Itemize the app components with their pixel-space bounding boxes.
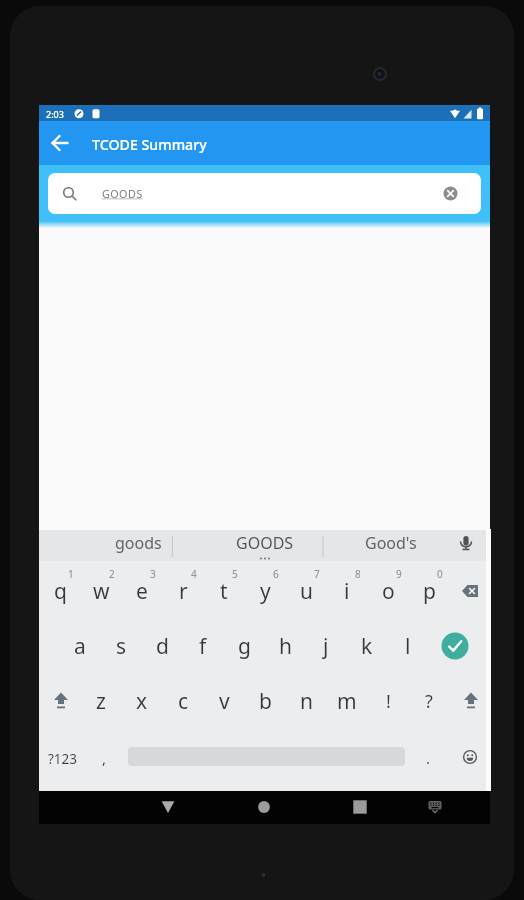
- staticText: f: [199, 632, 207, 661]
- button[interactable]: o: [370, 571, 406, 611]
- staticText: c: [178, 687, 189, 716]
- button[interactable]: p: [411, 571, 447, 611]
- staticText: a: [74, 632, 86, 661]
- staticText: z: [96, 687, 106, 716]
- staticText: 5: [232, 567, 238, 581]
- staticText: w: [93, 577, 110, 606]
- button[interactable]: l: [390, 626, 426, 666]
- button[interactable]: e: [124, 571, 160, 611]
- button[interactable]: h: [267, 626, 303, 666]
- staticText: 7: [314, 567, 320, 581]
- staticText: goods: [115, 532, 162, 554]
- button[interactable]: u: [288, 571, 324, 611]
- button[interactable]: !: [370, 681, 406, 721]
- staticText: .: [426, 748, 431, 768]
- button[interactable]: a: [62, 626, 98, 666]
- button[interactable]: c: [165, 681, 201, 721]
- button[interactable]: y: [247, 571, 283, 611]
- button[interactable]: [452, 571, 489, 611]
- button[interactable]: [344, 791, 376, 823]
- staticText: g: [238, 632, 251, 661]
- staticText: d: [156, 632, 169, 661]
- staticText: ?: [425, 689, 433, 714]
- staticText: n: [300, 687, 313, 716]
- button[interactable]: w: [83, 571, 119, 611]
- staticText: k: [361, 632, 373, 661]
- staticText: GOODS: [102, 186, 143, 201]
- button[interactable]: ?123: [43, 739, 83, 779]
- staticText: 0: [437, 567, 443, 581]
- button[interactable]: [419, 791, 451, 823]
- button[interactable]: GOODS: [48, 173, 481, 214]
- staticText: 4: [191, 567, 197, 581]
- staticText: i: [344, 577, 350, 606]
- staticText: l: [405, 632, 411, 661]
- staticText: e: [136, 577, 148, 606]
- staticText: h: [279, 632, 292, 661]
- button[interactable]: [451, 530, 484, 561]
- staticText: 2:03: [46, 108, 64, 120]
- button[interactable]: Good's: [331, 527, 451, 558]
- button[interactable]: q: [42, 571, 78, 611]
- staticText: GOODS: [236, 532, 294, 554]
- button[interactable]: m: [329, 681, 365, 721]
- button[interactable]: t: [206, 571, 242, 611]
- staticText: m: [337, 687, 357, 716]
- button[interactable]: .: [410, 738, 446, 778]
- staticText: 1: [68, 567, 74, 581]
- staticText: x: [136, 687, 148, 716]
- button[interactable]: i: [329, 571, 365, 611]
- staticText: TCODE Summary: [92, 135, 207, 154]
- staticText: y: [260, 577, 271, 606]
- button[interactable]: goods: [78, 527, 198, 558]
- staticText: j: [323, 632, 329, 661]
- staticText: t: [220, 577, 228, 606]
- staticText: u: [300, 577, 313, 606]
- button[interactable]: z: [83, 681, 119, 721]
- button[interactable]: [42, 681, 79, 721]
- button[interactable]: s: [103, 626, 139, 666]
- button[interactable]: d: [144, 626, 180, 666]
- button[interactable]: [425, 624, 485, 668]
- staticText: 8: [355, 567, 361, 581]
- staticText: b: [259, 687, 272, 716]
- staticText: p: [423, 577, 436, 606]
- button[interactable]: f: [185, 626, 221, 666]
- staticText: 9: [396, 567, 402, 581]
- staticText: o: [382, 577, 395, 606]
- button[interactable]: [452, 737, 488, 777]
- staticText: 3: [150, 567, 156, 581]
- staticText: q: [54, 577, 67, 606]
- button[interactable]: b: [247, 681, 283, 721]
- staticText: s: [116, 632, 127, 661]
- staticText: Good's: [365, 532, 417, 554]
- button[interactable]: r: [165, 571, 201, 611]
- button[interactable]: ,: [86, 738, 122, 778]
- staticText: v: [219, 687, 230, 716]
- button[interactable]: ?: [411, 681, 447, 721]
- button[interactable]: g: [226, 626, 262, 666]
- button[interactable]: [46, 129, 74, 157]
- button[interactable]: v: [206, 681, 242, 721]
- staticText: !: [386, 689, 391, 714]
- button[interactable]: [452, 681, 489, 721]
- button[interactable]: x: [124, 681, 160, 721]
- staticText: r: [179, 577, 188, 606]
- staticText: ,: [102, 748, 107, 768]
- button[interactable]: [248, 791, 280, 823]
- button[interactable]: [152, 791, 184, 823]
- button[interactable]: GOODS: [205, 527, 325, 558]
- staticText: ?123: [48, 750, 78, 768]
- button[interactable]: k: [349, 626, 385, 666]
- staticText: 2: [109, 567, 115, 581]
- button[interactable]: n: [288, 681, 324, 721]
- button[interactable]: j: [308, 626, 344, 666]
- staticText: 6: [273, 567, 279, 581]
